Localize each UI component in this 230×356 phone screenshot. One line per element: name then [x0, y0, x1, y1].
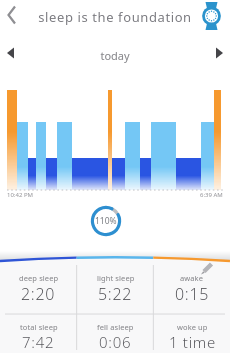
staticText: woke up: [177, 322, 208, 332]
staticText: 5:22: [98, 283, 133, 305]
staticText: 0:15: [175, 283, 210, 305]
staticText: today: [0, 48, 230, 63]
staticText: 2:20: [21, 283, 56, 305]
button[interactable]: light sleep: [77, 271, 154, 285]
staticText: 7:42: [22, 332, 55, 352]
staticText: 110%: [95, 215, 117, 227]
button[interactable]: 0:06: [77, 331, 154, 352]
button[interactable]: [198, 2, 225, 30]
button[interactable]: 1 time: [154, 331, 230, 352]
button[interactable]: awake: [154, 271, 230, 285]
staticText: deep sleep: [19, 273, 59, 283]
button[interactable]: 2:20: [0, 283, 77, 305]
staticText: 6:39 AM: [200, 191, 223, 199]
button[interactable]: woke up: [154, 320, 230, 334]
button[interactable]: deep sleep: [0, 271, 77, 285]
button[interactable]: total sleep: [0, 320, 77, 334]
staticText: sleep is the foundation: [0, 8, 230, 26]
staticText: 10:42 PM: [7, 191, 33, 199]
staticText: total sleep: [20, 322, 58, 332]
button[interactable]: 0:15: [154, 283, 230, 305]
staticText: fell asleep: [97, 322, 134, 332]
staticText: 1 time: [169, 332, 216, 352]
button[interactable]: 5:22: [77, 283, 154, 305]
button[interactable]: [2, 2, 24, 28]
staticText: awake: [180, 273, 204, 283]
button[interactable]: [3, 44, 21, 62]
staticText: light sleep: [97, 273, 135, 283]
button[interactable]: [209, 44, 227, 62]
staticText: 0:06: [99, 332, 132, 352]
button[interactable]: 7:42: [0, 331, 77, 352]
button[interactable]: fell asleep: [77, 320, 154, 334]
